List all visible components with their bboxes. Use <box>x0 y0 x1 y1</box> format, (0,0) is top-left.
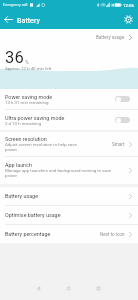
button[interactable]: Screen resolution <box>0 132 138 156</box>
button[interactable]: Back <box>0 10 17 29</box>
staticText: Emergency call <box>3 3 28 7</box>
staticText: Battery usage <box>96 35 125 40</box>
button[interactable]: Battery usage <box>0 31 138 44</box>
staticText: Battery percentage <box>5 231 100 237</box>
staticText: 2 d 10 h remaining <box>5 121 42 126</box>
button[interactable]: Recent apps <box>83 277 113 300</box>
staticText: Screen resolution <box>5 136 47 142</box>
staticText: 13 h 31 min remaining <box>5 100 49 105</box>
button[interactable]: Back <box>23 277 53 300</box>
staticText: 12:06 <box>123 3 134 8</box>
button[interactable]: Ultra power saving mode <box>0 110 138 130</box>
staticText: Power saving mode <box>5 94 53 100</box>
staticText: Next to icon <box>100 232 125 237</box>
button[interactable]: Settings <box>119 10 138 29</box>
staticText: Smart <box>112 142 125 147</box>
button[interactable]: Battery percentage <box>0 225 138 243</box>
staticText: % <box>25 59 29 65</box>
button[interactable]: Power saving mode <box>0 89 138 109</box>
staticText: Battery <box>17 16 40 24</box>
staticText: Approx. 12 h 40 min left <box>5 66 52 71</box>
staticText: Battery usage <box>5 193 129 199</box>
button[interactable]: App launch <box>0 157 138 184</box>
button[interactable]: Optimise battery usage <box>0 206 138 224</box>
staticText: Adjust screen resolution to help save po… <box>5 142 79 153</box>
staticText: Optimise battery usage <box>5 212 129 218</box>
staticText: Ultra power saving mode <box>5 115 65 121</box>
staticText: App launch <box>5 162 32 168</box>
staticText: Manage app launches and background runni… <box>5 168 119 179</box>
staticText: 36 <box>5 48 25 67</box>
button[interactable]: Battery usage <box>0 187 138 205</box>
